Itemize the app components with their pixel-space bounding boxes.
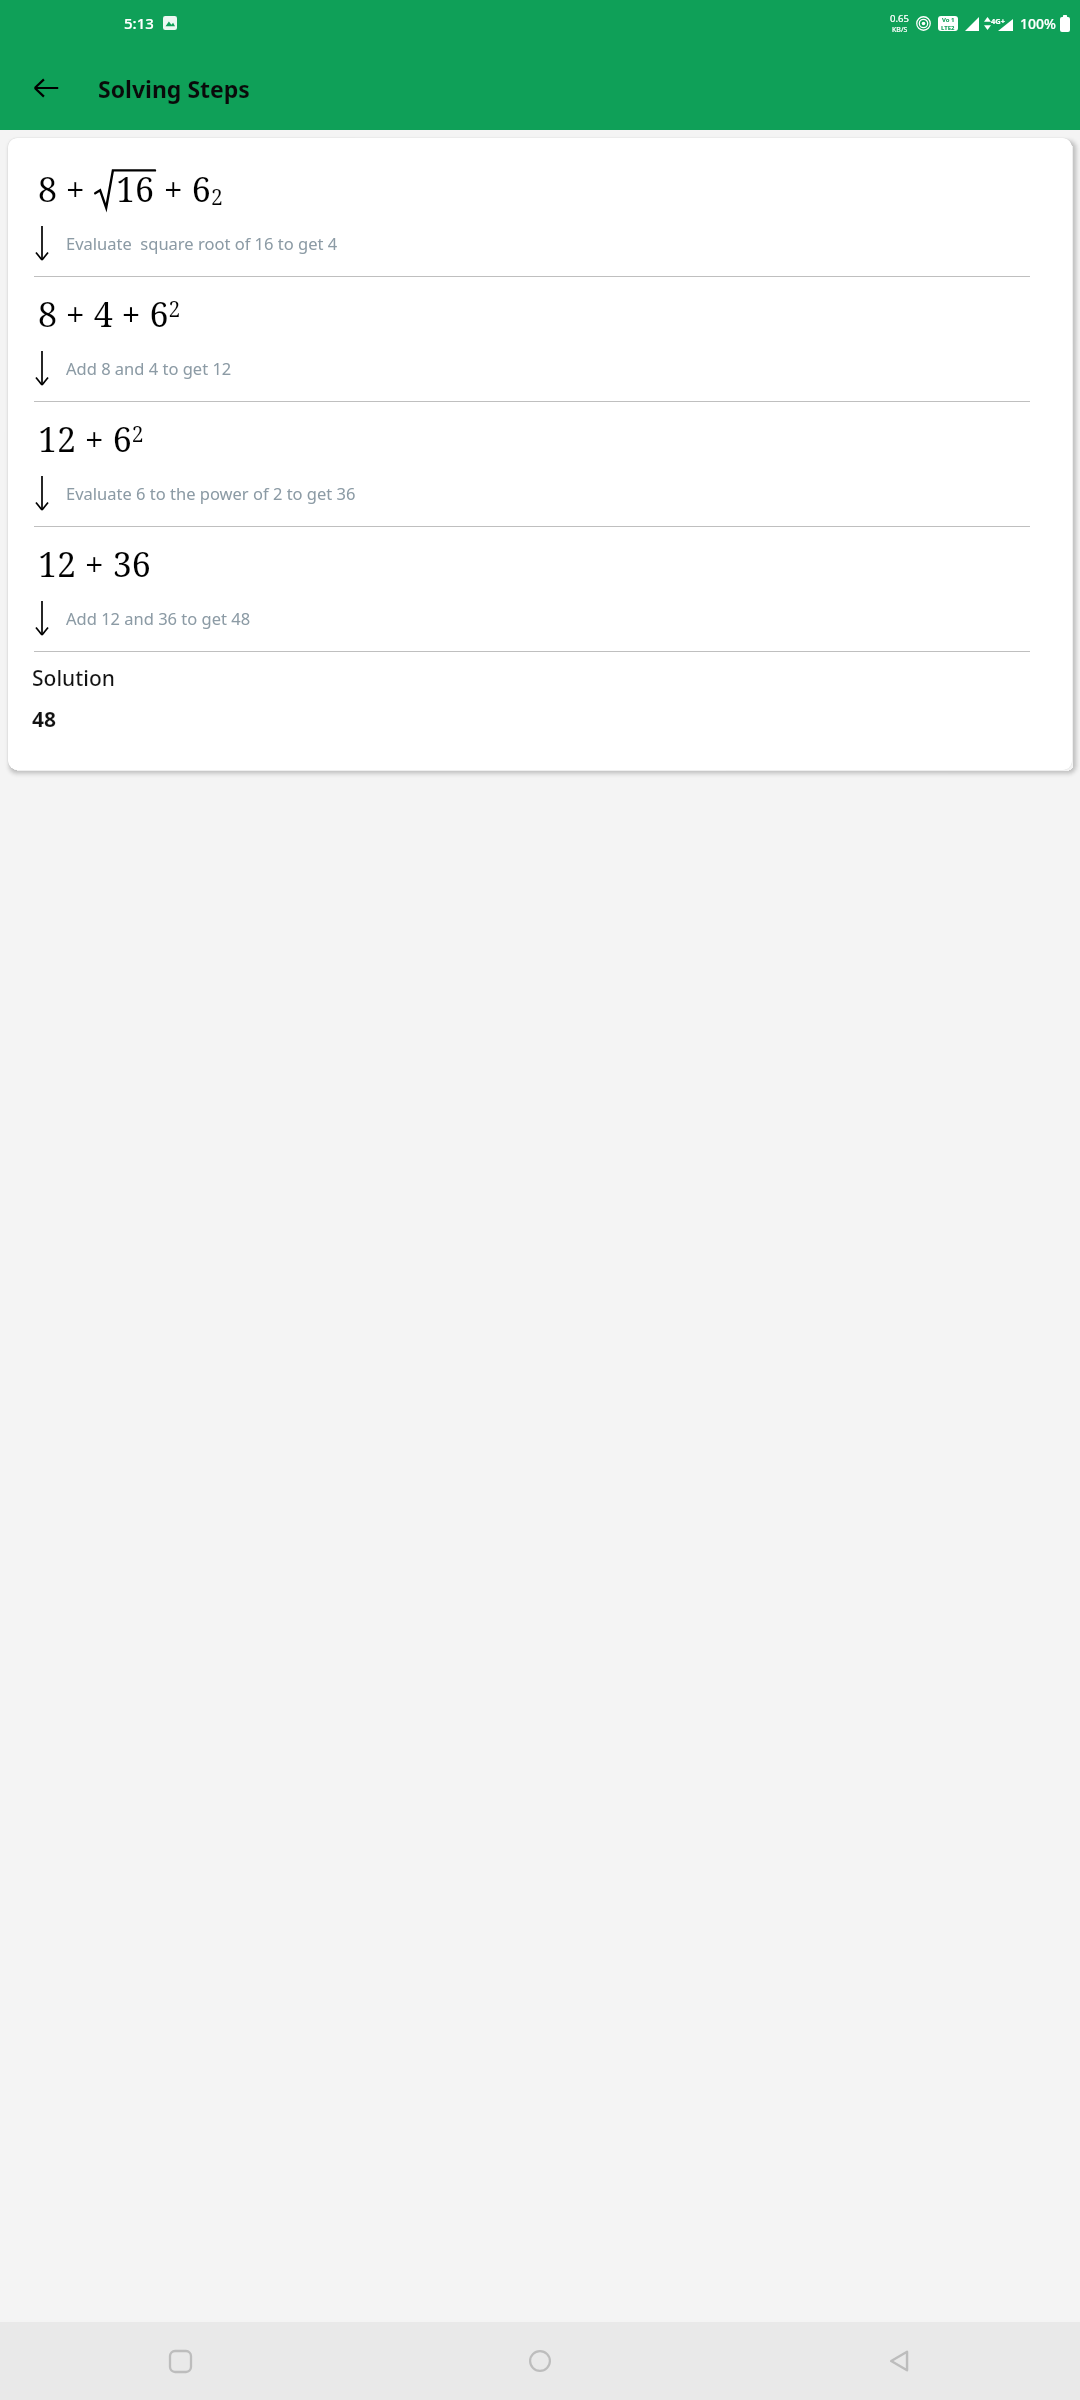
staticText: Evaluate square root of 16 to get 4 (66, 232, 338, 254)
button[interactable]: 12 + 62 (32, 402, 1048, 526)
staticText: Solution (32, 664, 115, 693)
button[interactable]: 8 + 4 + 62 (32, 277, 1048, 401)
staticText: 8 + (38, 166, 94, 212)
staticText: LTE2 (941, 24, 955, 31)
staticText: 48 (32, 705, 57, 734)
staticText: KB/S (892, 25, 908, 35)
staticText: 16 (116, 166, 155, 212)
staticText: 5:13 (124, 13, 154, 33)
staticText: + 6 (155, 166, 211, 212)
staticText: 12 + 36 (38, 541, 151, 587)
staticText: 12 + 62 (38, 416, 144, 462)
staticText: 100% (1020, 14, 1056, 33)
staticText: Add 8 and 4 to get 12 (66, 357, 232, 379)
button[interactable]: 8 + (32, 152, 1048, 276)
button[interactable]: Recents (0, 2322, 360, 2400)
staticText: Vo 1 (942, 16, 955, 24)
staticText: Solving Steps (98, 73, 250, 104)
staticText: 2 (211, 183, 223, 212)
staticText: 8 + 4 + 62 (38, 291, 181, 337)
staticText: 4G+ (991, 16, 1006, 26)
staticText: Add 12 and 36 to get 48 (66, 607, 251, 629)
staticText: 0.65 (890, 12, 909, 25)
button[interactable]: Back (22, 64, 70, 112)
button[interactable]: 12 + 36 (32, 527, 1048, 651)
staticText: Evaluate 6 to the power of 2 to get 36 (66, 482, 356, 504)
